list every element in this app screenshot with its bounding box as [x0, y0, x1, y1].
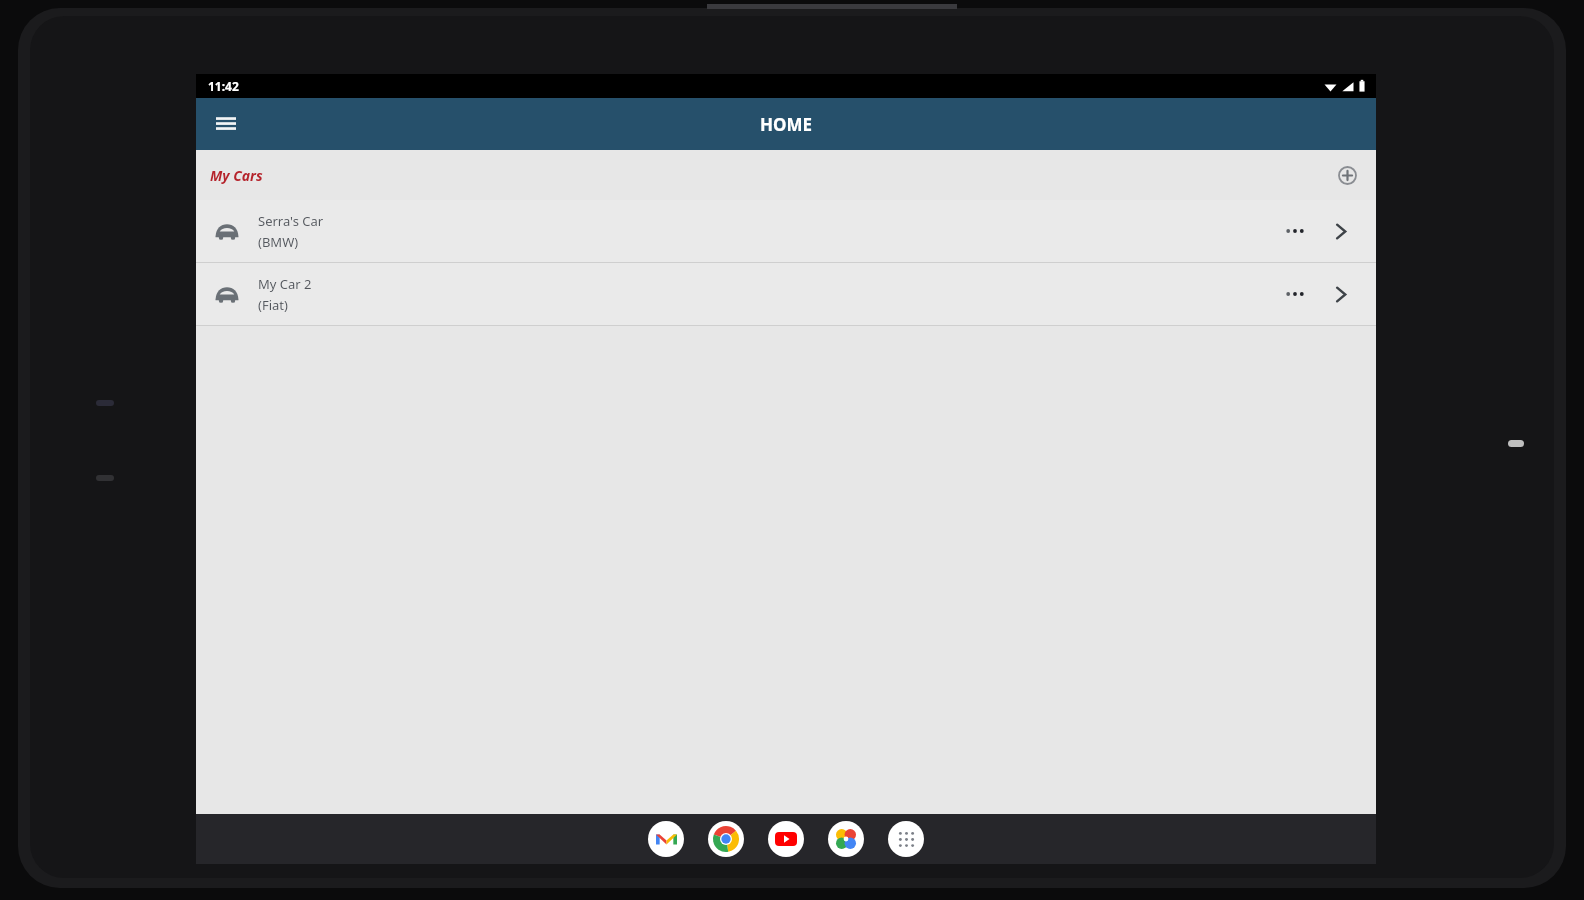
button[interactable]: Serra's Car: [196, 200, 1376, 262]
button[interactable]: Open navigation drawer: [208, 106, 244, 142]
button[interactable]: YouTube: [768, 821, 804, 857]
button[interactable]: Add car: [1330, 158, 1364, 192]
staticText: Serra's Car: [258, 212, 324, 230]
button[interactable]: Gmail: [648, 821, 684, 857]
button[interactable]: More options for My Car 2: [1272, 271, 1318, 317]
staticText: 11:42: [208, 78, 239, 94]
staticText: (BMW): [258, 233, 299, 251]
button[interactable]: Open My Car 2: [1318, 272, 1362, 316]
staticText: My Car 2: [258, 275, 312, 293]
button[interactable]: My Car 2: [196, 263, 1376, 325]
button[interactable]: More options for Serra's Car: [1272, 208, 1318, 254]
staticText: HOME: [760, 113, 813, 136]
button[interactable]: Photos: [828, 821, 864, 857]
button[interactable]: Chrome: [708, 821, 744, 857]
button[interactable]: All apps: [888, 821, 924, 857]
staticText: (Fiat): [258, 296, 288, 314]
button[interactable]: Open Serra's Car: [1318, 209, 1362, 253]
staticText: My Cars: [210, 166, 263, 185]
